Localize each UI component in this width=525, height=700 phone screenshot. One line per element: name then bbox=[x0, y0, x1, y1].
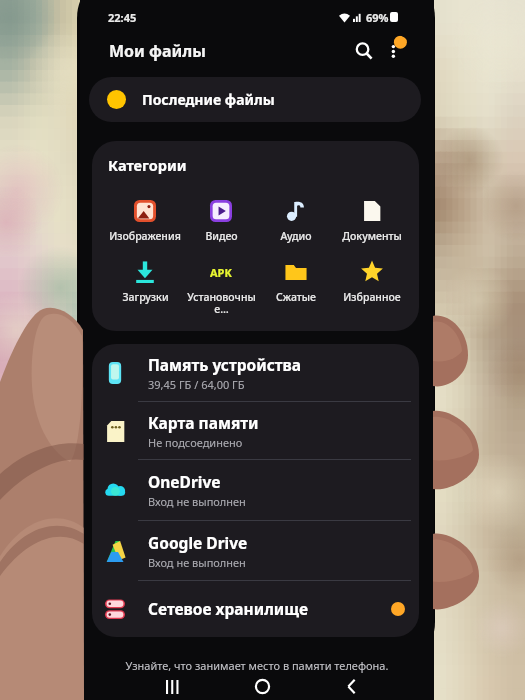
staticText: Сетевое хранилище bbox=[148, 598, 309, 619]
staticText: Не подсоединено bbox=[148, 435, 243, 450]
staticText: Мои файлы bbox=[109, 40, 206, 62]
button[interactable]: Back bbox=[328, 673, 374, 700]
button[interactable]: Сетевое хранилище bbox=[92, 581, 419, 637]
staticText: APK bbox=[210, 265, 232, 280]
button[interactable]: OneDrive bbox=[92, 460, 419, 521]
staticText: Сжатые bbox=[276, 290, 316, 304]
staticText: 22:45 bbox=[108, 10, 137, 25]
staticText: Избранное bbox=[343, 290, 401, 304]
button[interactable]: Последние файлы bbox=[89, 77, 421, 122]
staticText: Вход не выполнен bbox=[148, 494, 246, 509]
staticText: Память устройства bbox=[148, 354, 302, 375]
button[interactable]: Search bbox=[344, 35, 376, 67]
staticText: 69% bbox=[366, 10, 389, 25]
button[interactable]: Карта памяти bbox=[92, 402, 419, 460]
staticText: Видео bbox=[205, 229, 238, 243]
staticText: Аудио bbox=[280, 229, 312, 243]
staticText: Категории bbox=[108, 155, 187, 175]
button[interactable]: Recents bbox=[149, 673, 195, 700]
button[interactable]: Загрузки bbox=[108, 260, 182, 304]
staticText: Вход не выполнен bbox=[148, 555, 246, 570]
staticText: Загрузки bbox=[122, 290, 169, 304]
button[interactable]: Google Drive bbox=[92, 521, 419, 581]
button[interactable]: Сжатые bbox=[259, 260, 333, 304]
button[interactable]: Видео bbox=[184, 199, 258, 243]
button[interactable]: APK bbox=[184, 260, 258, 316]
button[interactable]: Избранное bbox=[335, 260, 409, 304]
button[interactable]: More options bbox=[380, 35, 412, 67]
staticText: Установочны е… bbox=[187, 290, 256, 316]
staticText: 39,45 ГБ / 64,00 ГБ bbox=[148, 377, 245, 392]
staticText: Изображения bbox=[109, 229, 181, 243]
button[interactable]: Home bbox=[239, 673, 285, 700]
button[interactable]: Аудио bbox=[259, 199, 333, 243]
button[interactable]: Документы bbox=[335, 199, 409, 243]
button[interactable]: Изображения bbox=[108, 199, 182, 243]
staticText: Карта памяти bbox=[148, 412, 259, 433]
staticText: Google Drive bbox=[148, 532, 248, 553]
button[interactable]: Память устройства bbox=[92, 344, 419, 402]
staticText: Последние файлы bbox=[142, 90, 275, 109]
staticText: OneDrive bbox=[148, 471, 221, 492]
staticText: Узнайте, что занимает место в памяти тел… bbox=[80, 658, 434, 673]
staticText: Документы bbox=[342, 229, 402, 243]
